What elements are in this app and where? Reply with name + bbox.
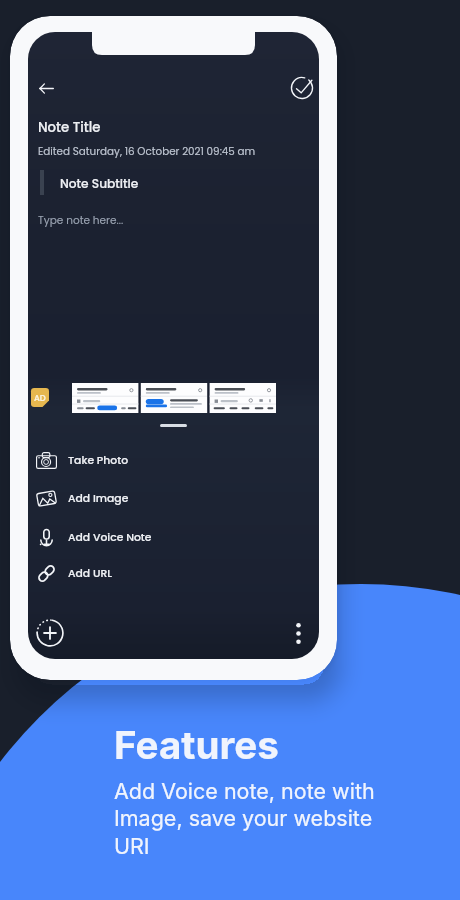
- staticText: Add URL: [68, 566, 113, 581]
- staticText: AD: [34, 392, 46, 404]
- staticText: Features: [114, 722, 279, 769]
- button[interactable]: Add Image: [28, 479, 319, 517]
- staticText: Note Subtitle: [60, 175, 139, 192]
- staticText: Note Title: [38, 118, 101, 137]
- staticText: Type note here...: [38, 213, 124, 228]
- staticText: Add Voice note, note with Image, save yo…: [114, 778, 378, 860]
- button[interactable]: Add URL: [28, 554, 319, 592]
- button[interactable]: More options: [284, 619, 313, 648]
- button[interactable]: Done: [287, 73, 317, 103]
- button[interactable]: Add note: [32, 615, 68, 651]
- staticText: Add Voice Note: [68, 530, 152, 545]
- button[interactable]: Take Photo: [28, 441, 319, 479]
- button[interactable]: Add Voice Note: [28, 518, 319, 556]
- staticText: Take Photo: [68, 453, 129, 468]
- staticText: Edited Saturday, 16 October 2021 09:45 a…: [38, 144, 256, 158]
- staticText: Add Image: [68, 491, 129, 506]
- button[interactable]: Back: [31, 73, 61, 103]
